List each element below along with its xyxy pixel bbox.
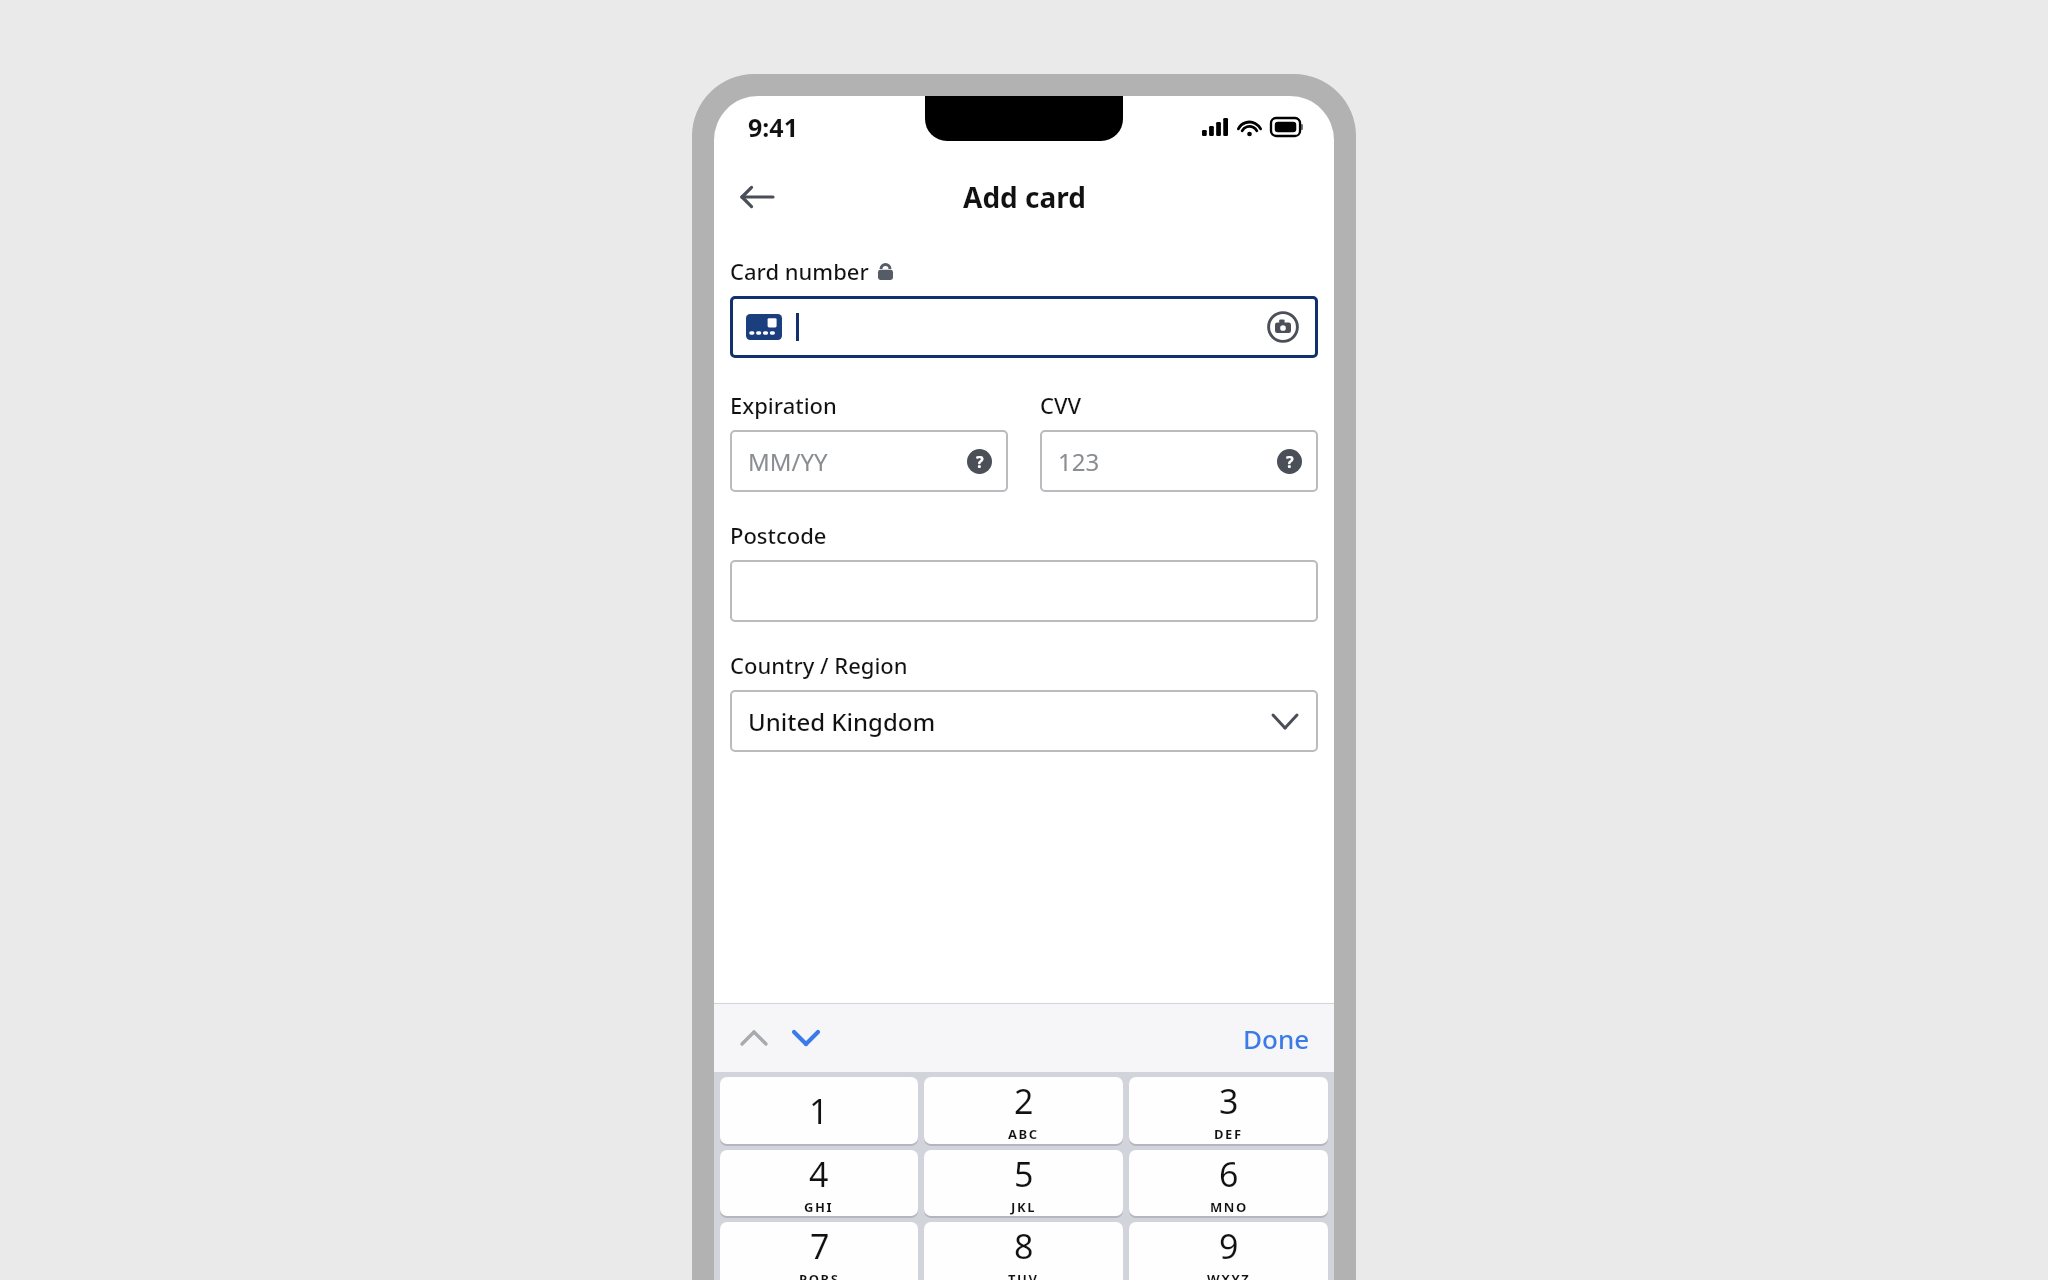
staticText: MNO (1210, 1198, 1248, 1216)
button[interactable]: Previous field (732, 1016, 776, 1060)
staticText: TUV (1008, 1270, 1039, 1280)
staticText: 5 (1014, 1151, 1034, 1197)
button[interactable]: 4 (720, 1150, 918, 1216)
staticText: ABC (1008, 1125, 1039, 1143)
staticText: United Kingdom (748, 705, 936, 738)
button[interactable]: 5 (924, 1150, 1123, 1216)
staticText: 1 (809, 1088, 829, 1134)
button[interactable]: Done (1231, 1013, 1322, 1064)
button[interactable]: CVV help (1274, 446, 1304, 476)
button[interactable]: MM/YY (730, 430, 1008, 492)
staticText: 9 (1219, 1223, 1239, 1269)
button[interactable]: United Kingdom (730, 690, 1318, 752)
staticText: 8 (1014, 1223, 1034, 1269)
staticText: CVV (1040, 390, 1082, 420)
staticText: 3 (1219, 1078, 1239, 1124)
staticText: MM/YY (748, 445, 828, 478)
staticText: 4 (809, 1151, 829, 1197)
button[interactable]: Scan card with camera (730, 296, 1318, 358)
staticText: ? (976, 451, 984, 473)
staticText: JKL (1011, 1198, 1037, 1216)
button[interactable]: Back (730, 170, 784, 224)
button[interactable]: 7 (720, 1222, 918, 1280)
staticText: WXYZ (1207, 1270, 1251, 1280)
staticText: 9:41 (748, 110, 798, 144)
staticText: Country / Region (730, 650, 908, 680)
staticText: Card number (730, 256, 869, 286)
staticText: Add card (963, 178, 1086, 216)
button[interactable]: Scan card with camera (1266, 310, 1300, 344)
staticText: GHI (804, 1198, 834, 1216)
button[interactable]: Expiration date help (964, 446, 994, 476)
button[interactable]: 123 (1040, 430, 1318, 492)
button[interactable]: 6 (1129, 1150, 1328, 1216)
button[interactable]: 1 (720, 1077, 918, 1144)
button[interactable] (730, 560, 1318, 622)
button[interactable]: Next field (784, 1016, 828, 1060)
button[interactable]: 9 (1129, 1222, 1328, 1280)
button[interactable]: 8 (924, 1222, 1123, 1280)
staticText: Postcode (730, 520, 827, 550)
staticText: 6 (1219, 1151, 1239, 1197)
staticText: DEF (1214, 1125, 1243, 1143)
staticText: 7 (810, 1223, 830, 1269)
staticText: 2 (1014, 1078, 1034, 1124)
button[interactable]: 3 (1129, 1077, 1328, 1144)
staticText: Done (1243, 1021, 1310, 1056)
staticText: PQRS (799, 1270, 840, 1280)
staticText: 123 (1058, 445, 1100, 478)
staticText: ? (1286, 451, 1294, 473)
button[interactable]: 2 (924, 1077, 1123, 1144)
staticText: Expiration (730, 390, 837, 420)
